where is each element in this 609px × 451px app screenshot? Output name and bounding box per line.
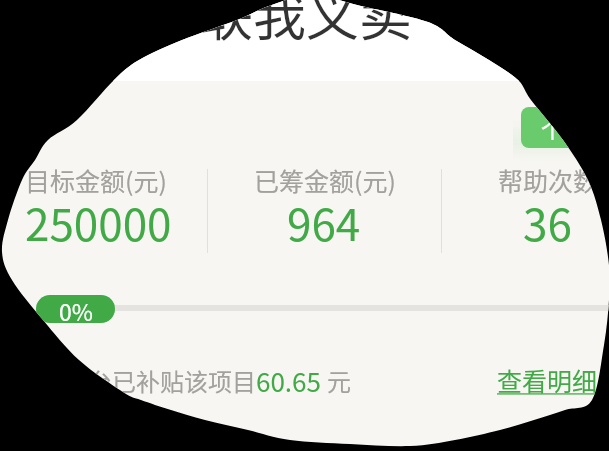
staticText: 已筹金额(元) — [254, 162, 396, 198]
staticText: 250000 — [25, 190, 172, 254]
staticText: 元 — [327, 363, 351, 398]
button[interactable]: 查看明细 — [497, 362, 598, 398]
button[interactable]: Unit selector — [521, 107, 583, 148]
staticText: 964 — [287, 190, 361, 254]
button[interactable]: 联我义卖 — [200, 0, 412, 52]
staticText: 目标金额(元) — [25, 162, 167, 198]
staticText: 平台已补贴该项目 — [64, 363, 256, 398]
staticText: 联我义卖 — [200, 0, 412, 52]
staticText: 0% — [59, 295, 93, 322]
staticText: 帮助次数 — [498, 162, 599, 198]
staticText: 36 — [523, 190, 572, 254]
staticText: 查看明细 — [497, 362, 598, 398]
button[interactable]: 平台已补贴该项目 — [64, 363, 256, 398]
button[interactable]: 0% — [36, 295, 115, 323]
staticText: 60.65 — [256, 362, 321, 400]
staticText: 个 — [541, 111, 564, 144]
